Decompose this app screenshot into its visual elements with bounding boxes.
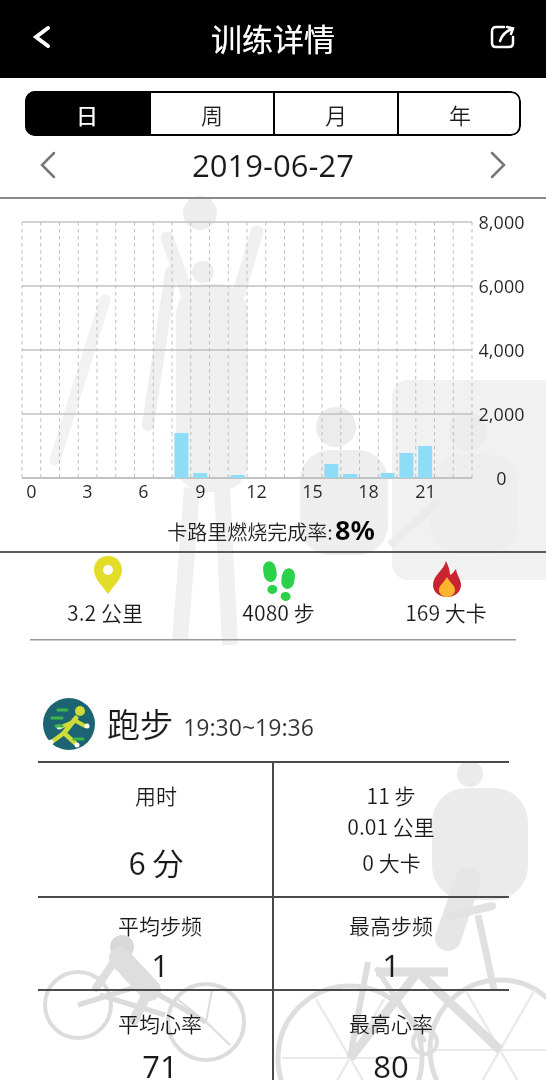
staticText: 4,000 xyxy=(478,338,525,363)
staticText: 卡路里燃烧完成率: xyxy=(167,517,333,546)
staticText: 6 xyxy=(138,479,149,504)
staticText: 80 xyxy=(373,1045,409,1080)
button[interactable] xyxy=(478,145,518,185)
staticText: 训练详情 xyxy=(211,15,335,60)
staticText: 6 分 xyxy=(128,839,184,884)
staticText: 21 xyxy=(415,479,436,504)
staticText: 用时 xyxy=(135,780,177,810)
staticText: 11 步 xyxy=(366,780,416,810)
staticText: 71 xyxy=(142,1045,178,1080)
staticText: 4080 步 xyxy=(242,597,315,627)
button[interactable] xyxy=(20,17,64,61)
button[interactable] xyxy=(28,145,68,185)
staticText: 8,000 xyxy=(478,210,525,235)
staticText: 3.2 公里 xyxy=(67,597,143,627)
staticText: 日 xyxy=(76,98,99,130)
staticText: 8% xyxy=(335,511,375,548)
staticText: 18 xyxy=(358,479,379,504)
staticText: 0 大卡 xyxy=(362,847,421,877)
staticText: 最高步频 xyxy=(349,910,433,940)
staticText: 0 xyxy=(496,466,507,491)
staticText: 平均步频 xyxy=(118,910,202,940)
button[interactable]: 日 xyxy=(25,91,149,136)
staticText: 1 xyxy=(382,944,400,986)
staticText: 169 大卡 xyxy=(405,597,487,627)
staticText: 周 xyxy=(201,98,224,130)
staticText: 2019-06-27 xyxy=(192,144,354,186)
staticText: 19:30~19:36 xyxy=(183,711,314,742)
staticText: 2,000 xyxy=(478,402,525,427)
staticText: 12 xyxy=(246,479,267,504)
staticText: 6,000 xyxy=(478,274,525,299)
staticText: 1 xyxy=(151,944,169,986)
button[interactable]: 周 xyxy=(151,91,273,136)
button[interactable]: 年 xyxy=(399,91,521,136)
staticText: 年 xyxy=(449,98,472,130)
staticText: 最高心率 xyxy=(349,1008,433,1038)
staticText: 3 xyxy=(82,479,93,504)
button[interactable] xyxy=(483,16,527,60)
staticText: 0 xyxy=(26,479,37,504)
button[interactable]: 月 xyxy=(275,91,397,136)
staticText: 15 xyxy=(302,479,323,504)
staticText: 月 xyxy=(325,98,348,130)
staticText: 9 xyxy=(195,479,206,504)
staticText: 平均心率 xyxy=(118,1008,202,1038)
staticText: 0.01 公里 xyxy=(347,811,435,841)
staticText: 跑步 xyxy=(107,699,173,747)
